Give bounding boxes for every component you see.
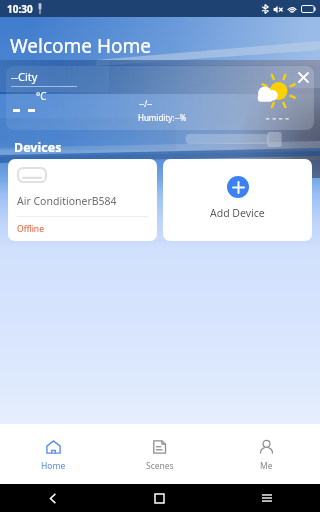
staticText: --City xyxy=(11,69,38,84)
staticText: --/-- xyxy=(139,98,153,109)
staticText: 10:30 xyxy=(7,2,33,16)
button[interactable]: Home xyxy=(106,484,213,512)
button[interactable]: Home xyxy=(0,424,106,484)
staticText: Welcome Home xyxy=(10,33,151,59)
staticText: Home xyxy=(41,460,66,472)
staticText: Me xyxy=(260,460,273,472)
staticText: Devices xyxy=(14,139,62,156)
button[interactable]: Scenes xyxy=(106,424,213,484)
button[interactable]: --City xyxy=(6,66,314,130)
button[interactable]: Me xyxy=(213,424,320,484)
button[interactable]: Add Device xyxy=(163,159,312,241)
button[interactable]: Back xyxy=(0,484,106,512)
staticText: Air ConditionerB584 xyxy=(17,194,117,208)
staticText: °C xyxy=(36,89,47,103)
button[interactable]: Close weather card xyxy=(294,68,312,86)
button[interactable]: Air ConditionerB584 xyxy=(8,159,157,241)
staticText: Scenes xyxy=(146,460,174,472)
staticText: Add Device xyxy=(210,206,265,220)
button[interactable]: Recent apps xyxy=(213,484,320,512)
staticText: Offline xyxy=(17,223,44,235)
staticText: Humidity:--% xyxy=(138,112,187,123)
